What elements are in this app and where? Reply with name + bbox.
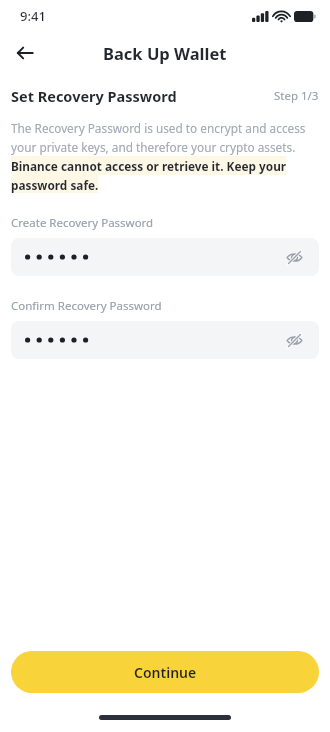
- staticText: The Recovery Password is used to encrypt…: [11, 120, 319, 193]
- staticText: Confirm Recovery Password: [11, 298, 162, 314]
- staticText: Set Recovery Password: [11, 86, 177, 106]
- button[interactable]: Back: [8, 36, 42, 70]
- staticText: Step 1/3: [274, 88, 319, 104]
- staticText: Continue: [134, 663, 197, 682]
- staticText: 9:41: [20, 7, 46, 25]
- button[interactable]: Show password: [11, 238, 319, 276]
- button[interactable]: Show password: [283, 329, 305, 351]
- staticText: Back Up Wallet: [103, 42, 227, 64]
- button[interactable]: Show password: [283, 246, 305, 268]
- button[interactable]: Show password: [11, 321, 319, 359]
- button[interactable]: Continue: [11, 651, 319, 693]
- staticText: Create Recovery Password: [11, 215, 154, 231]
